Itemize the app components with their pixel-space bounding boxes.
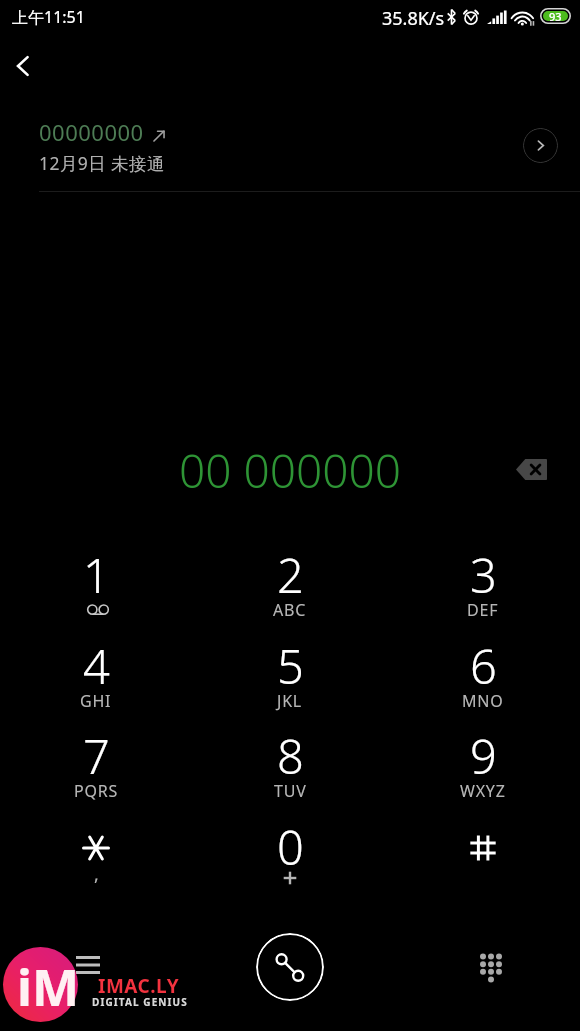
button[interactable]: Key 5	[215, 628, 365, 718]
staticText: GHI	[80, 690, 112, 712]
button[interactable]: Key 2	[215, 537, 365, 627]
staticText: 5	[277, 634, 304, 698]
button[interactable]: Key 1	[21, 537, 171, 627]
staticText: ABC	[273, 599, 307, 621]
staticText: 2	[277, 543, 304, 607]
staticText: DEF	[467, 599, 499, 621]
staticText: 0	[277, 815, 304, 879]
button[interactable]: Call details	[523, 128, 558, 163]
button[interactable]: Call	[256, 933, 324, 1001]
button[interactable]: Key *	[21, 809, 171, 899]
button[interactable]: Key 0	[215, 809, 365, 899]
button[interactable]: Key 3	[408, 537, 558, 627]
staticText: 00 000000	[179, 439, 402, 499]
staticText: 3	[470, 543, 497, 607]
staticText: 8	[277, 724, 304, 788]
button[interactable]: Key 8	[215, 718, 365, 808]
button[interactable]: Dialpad	[468, 945, 514, 991]
staticText: 1	[83, 543, 110, 607]
staticText: 35.8K/s	[382, 6, 445, 31]
button[interactable]: Key 7	[21, 718, 171, 808]
button[interactable]: Back	[0, 43, 46, 89]
staticText: 9	[470, 724, 497, 788]
button[interactable]: Key #	[408, 809, 558, 899]
button[interactable]: Key 9	[408, 718, 558, 808]
button[interactable]: Menu	[65, 942, 111, 988]
staticText: iM	[17, 953, 80, 1021]
staticText: WXYZ	[460, 780, 506, 802]
button[interactable]: Key 6	[408, 628, 558, 718]
button[interactable]: 00000000	[0, 106, 580, 186]
staticText: DIGITAL GENIUS	[92, 995, 188, 1009]
staticText: 00000000	[39, 117, 144, 147]
staticText: IMAC.LY	[98, 973, 180, 999]
staticText: 12月9日 未接通	[39, 151, 165, 175]
button[interactable]: Backspace	[508, 446, 556, 494]
staticText: PQRS	[74, 780, 119, 802]
staticText: JKL	[277, 690, 303, 712]
staticText: 上午11:51	[12, 6, 85, 28]
staticText: 93	[549, 9, 562, 24]
staticText: 6	[470, 634, 497, 698]
staticText: 7	[83, 724, 110, 788]
staticText: TUV	[274, 780, 307, 802]
staticText: ,	[94, 862, 99, 887]
staticText: 4	[83, 634, 110, 698]
staticText: MNO	[462, 690, 504, 712]
button[interactable]: Key 4	[21, 628, 171, 718]
